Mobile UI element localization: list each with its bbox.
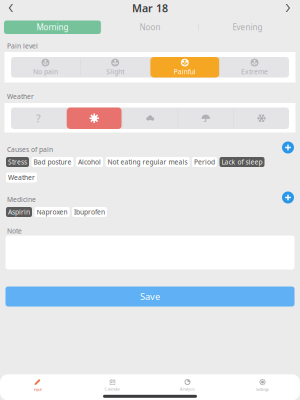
button[interactable]: Add medicine: [282, 191, 294, 203]
staticText: Extreme: [241, 67, 268, 76]
staticText: Causes of pain: [7, 145, 53, 154]
button[interactable]: Not eating regular meals: [105, 157, 189, 167]
staticText: Painful: [174, 67, 196, 76]
staticText: Ibuprofen: [74, 208, 105, 216]
button[interactable]: Sunny: [67, 107, 122, 129]
button[interactable]: Analysis: [150, 378, 225, 393]
button[interactable]: Lack of sleep: [219, 157, 264, 167]
button[interactable]: Unknown weather: [11, 107, 66, 129]
button[interactable]: Painful: [150, 57, 219, 77]
staticText: Lack of sleep: [221, 158, 262, 166]
button[interactable]: Ibuprofen: [72, 207, 107, 217]
staticText: Calendar: [104, 386, 120, 392]
staticText: Naproxen: [36, 208, 67, 216]
staticText: Evening: [232, 22, 262, 32]
button[interactable]: Previous day: [0, 0, 23, 16]
button[interactable]: Weather: [6, 172, 37, 182]
button[interactable]: Next day: [277, 0, 300, 16]
staticText: Save: [140, 290, 160, 303]
staticText: Pain level: [7, 41, 38, 50]
staticText: Weather: [8, 173, 35, 182]
button[interactable]: Save: [0, 286, 289, 306]
button[interactable]: Settings: [225, 378, 300, 393]
staticText: Weather: [7, 92, 34, 101]
button[interactable]: Extreme: [220, 57, 289, 77]
staticText: Noon: [139, 22, 160, 32]
button[interactable]: Cloudy: [122, 107, 177, 129]
button[interactable]: Naproxen: [34, 207, 69, 217]
staticText: Stress: [8, 158, 27, 166]
staticText: Aspirin: [8, 208, 30, 216]
staticText: ?: [36, 111, 41, 125]
staticText: Analysis: [180, 386, 195, 392]
button[interactable]: No pain: [11, 57, 80, 77]
button[interactable]: Stress: [6, 157, 29, 167]
button[interactable]: Calendar: [75, 378, 150, 393]
button[interactable]: Bad posture: [31, 157, 73, 167]
staticText: Settings: [256, 386, 269, 392]
staticText: Medicine: [7, 195, 36, 204]
button[interactable]: Evening: [199, 20, 296, 34]
button[interactable]: Rainy: [178, 107, 233, 129]
button[interactable]: Snowy: [234, 107, 289, 129]
button[interactable]: Slight: [81, 57, 150, 77]
staticText: Period: [194, 158, 215, 166]
button[interactable]: Input: [0, 378, 75, 393]
staticText: Slight: [106, 67, 124, 76]
staticText: Morning: [36, 22, 68, 32]
button[interactable]: Alcohol: [76, 157, 103, 167]
staticText: Input: [33, 386, 41, 392]
staticText: No pain: [33, 67, 58, 76]
staticText: Mar 18: [132, 1, 168, 15]
button[interactable]: Aspirin: [6, 207, 32, 217]
staticText: Not eating regular meals: [107, 158, 187, 166]
button[interactable]: Add cause: [282, 141, 294, 153]
button[interactable]: Morning: [4, 20, 101, 34]
button[interactable]: Period: [192, 157, 217, 167]
button[interactable]: Note: [0, 235, 289, 269]
button[interactable]: Noon: [101, 20, 198, 34]
staticText: Alcohol: [78, 158, 101, 166]
staticText: Bad posture: [33, 158, 71, 166]
staticText: Note: [7, 226, 22, 235]
